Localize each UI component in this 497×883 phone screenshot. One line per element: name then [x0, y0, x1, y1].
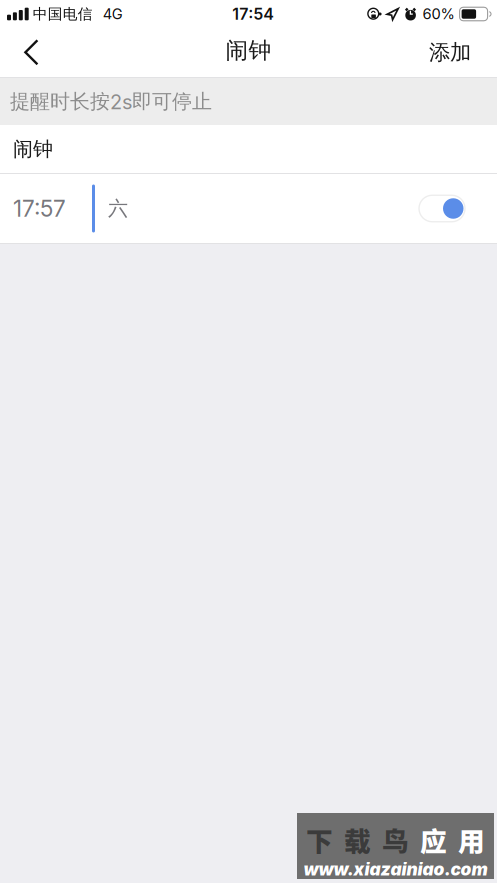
staticText: 用 — [458, 820, 485, 859]
staticText: 17:57 — [13, 195, 66, 222]
button[interactable]: Back — [0, 28, 58, 77]
staticText: 17:54 — [232, 4, 274, 24]
staticText: 闹钟 — [225, 36, 271, 65]
staticText: 下 — [306, 820, 333, 859]
staticText: 60% — [423, 5, 455, 23]
staticText: 中国电信 — [33, 5, 93, 23]
staticText: www.xiazainiao.com — [303, 859, 487, 880]
button[interactable]: 17:57 — [0, 174, 497, 243]
button[interactable]: 添加 — [411, 28, 497, 77]
staticText: 添加 — [429, 39, 471, 66]
staticText: 应 — [420, 820, 447, 859]
staticText: 六 — [108, 196, 128, 221]
staticText: 载 — [344, 820, 371, 859]
staticText: 鸟 — [382, 820, 409, 859]
staticText: 闹钟 — [13, 136, 53, 162]
staticText: 4G — [103, 5, 123, 23]
staticText: 提醒时长按2s即可停止 — [10, 89, 212, 114]
